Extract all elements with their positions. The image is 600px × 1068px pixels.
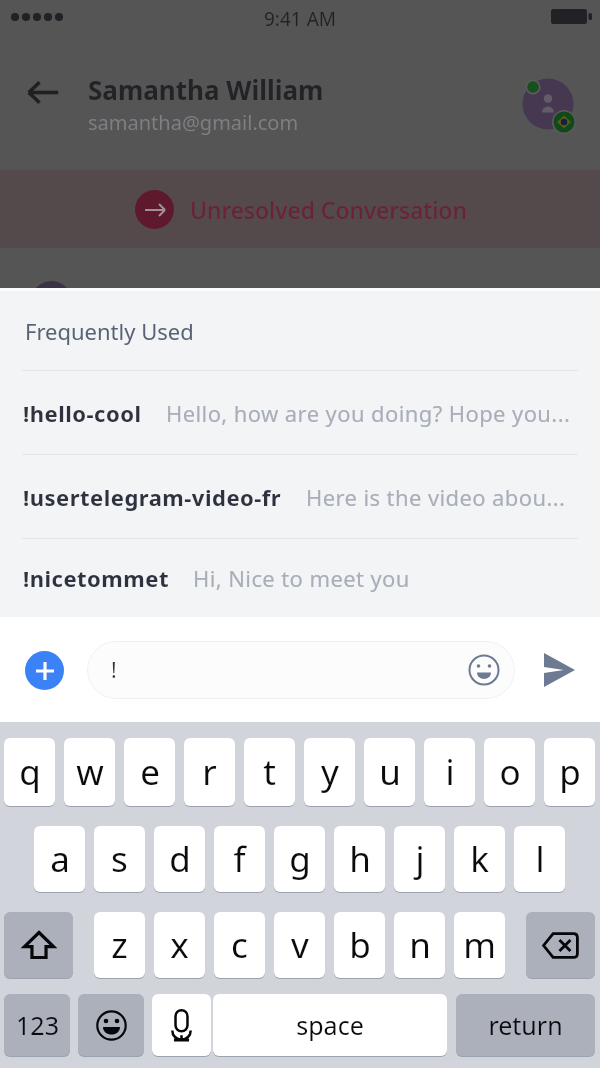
button[interactable]: j <box>394 826 445 892</box>
button[interactable]: h <box>334 826 385 892</box>
button[interactable]: n <box>394 912 445 978</box>
button[interactable]: Back <box>19 68 67 116</box>
staticText: Hi, Nice to meet you <box>193 563 410 593</box>
button[interactable]: Delete <box>526 912 595 978</box>
button[interactable]: i <box>424 738 475 806</box>
button[interactable]: t <box>244 738 295 806</box>
button[interactable]: v <box>274 912 325 978</box>
staticText: k <box>470 835 489 883</box>
staticText: t <box>263 748 276 796</box>
button[interactable]: l <box>514 826 565 892</box>
staticText: r <box>202 748 217 796</box>
staticText: w <box>76 748 104 796</box>
button[interactable]: !nicetommet <box>23 539 600 617</box>
staticText: h <box>349 835 371 883</box>
staticText: 123 <box>16 1008 59 1042</box>
staticText: ! <box>111 656 117 685</box>
button[interactable]: z <box>94 912 145 978</box>
button[interactable]: Voice input <box>152 994 211 1056</box>
staticText: return <box>488 1008 563 1042</box>
button[interactable]: x <box>154 912 205 978</box>
button[interactable]: a <box>34 826 85 892</box>
staticText: samantha@gmail.com <box>88 109 299 136</box>
staticText: Here is the video abou... <box>306 482 566 512</box>
staticText: o <box>499 748 521 796</box>
staticText: m <box>463 921 496 969</box>
staticText: Samantha William <box>88 72 324 107</box>
staticText: 9:41 AM <box>264 6 337 32</box>
staticText: u <box>379 748 401 796</box>
button[interactable]: b <box>334 912 385 978</box>
button[interactable]: o <box>484 738 535 806</box>
staticText: x <box>170 921 189 969</box>
staticText: Unresolved Conversation <box>190 194 467 225</box>
button[interactable]: Send <box>531 641 587 699</box>
button[interactable]: u <box>364 738 415 806</box>
button[interactable]: e <box>124 738 175 806</box>
button[interactable]: !usertelegram-video-fr <box>23 455 600 538</box>
button[interactable]: Emoji <box>78 994 144 1056</box>
button[interactable]: s <box>94 826 145 892</box>
button[interactable]: d <box>154 826 205 892</box>
staticText: e <box>140 748 160 796</box>
button[interactable]: Add attachment <box>25 651 64 690</box>
button[interactable]: p <box>544 738 595 806</box>
button[interactable]: Shift <box>4 912 73 978</box>
button[interactable]: g <box>274 826 325 892</box>
staticText: z <box>111 921 128 969</box>
staticText: v <box>291 921 309 969</box>
staticText: l <box>535 835 545 883</box>
button[interactable]: return <box>456 994 595 1056</box>
button[interactable]: space <box>213 994 447 1056</box>
button[interactable]: !hello-cool <box>23 371 600 454</box>
button[interactable]: f <box>214 826 265 892</box>
button[interactable]: k <box>454 826 505 892</box>
button[interactable]: w <box>64 738 115 806</box>
staticText: a <box>50 835 70 883</box>
staticText: i <box>445 748 455 796</box>
staticText: Hello, how are you doing? Hope you... <box>166 398 571 428</box>
staticText: Frequently Used <box>25 316 194 346</box>
button[interactable]: y <box>304 738 355 806</box>
button[interactable]: r <box>184 738 235 806</box>
button[interactable]: 123 <box>4 994 70 1056</box>
staticText: n <box>409 921 431 969</box>
button[interactable]: Unresolved Conversation <box>0 170 600 248</box>
staticText: p <box>559 748 581 796</box>
button[interactable]: c <box>214 912 265 978</box>
button[interactable]: q <box>4 738 55 806</box>
staticText: !nicetommet <box>23 563 169 593</box>
button[interactable]: ! <box>87 641 515 699</box>
staticText: f <box>233 835 246 883</box>
staticText: space <box>296 1008 364 1042</box>
button[interactable]: m <box>454 912 505 978</box>
staticText: g <box>289 835 311 883</box>
staticText: y <box>321 748 339 796</box>
staticText: j <box>415 835 425 883</box>
staticText: s <box>111 835 128 883</box>
staticText: q <box>19 748 41 796</box>
staticText: !usertelegram-video-fr <box>23 482 282 512</box>
staticText: d <box>169 835 191 883</box>
staticText: b <box>349 921 371 969</box>
staticText: !hello-cool <box>23 398 142 428</box>
staticText: c <box>231 921 248 969</box>
